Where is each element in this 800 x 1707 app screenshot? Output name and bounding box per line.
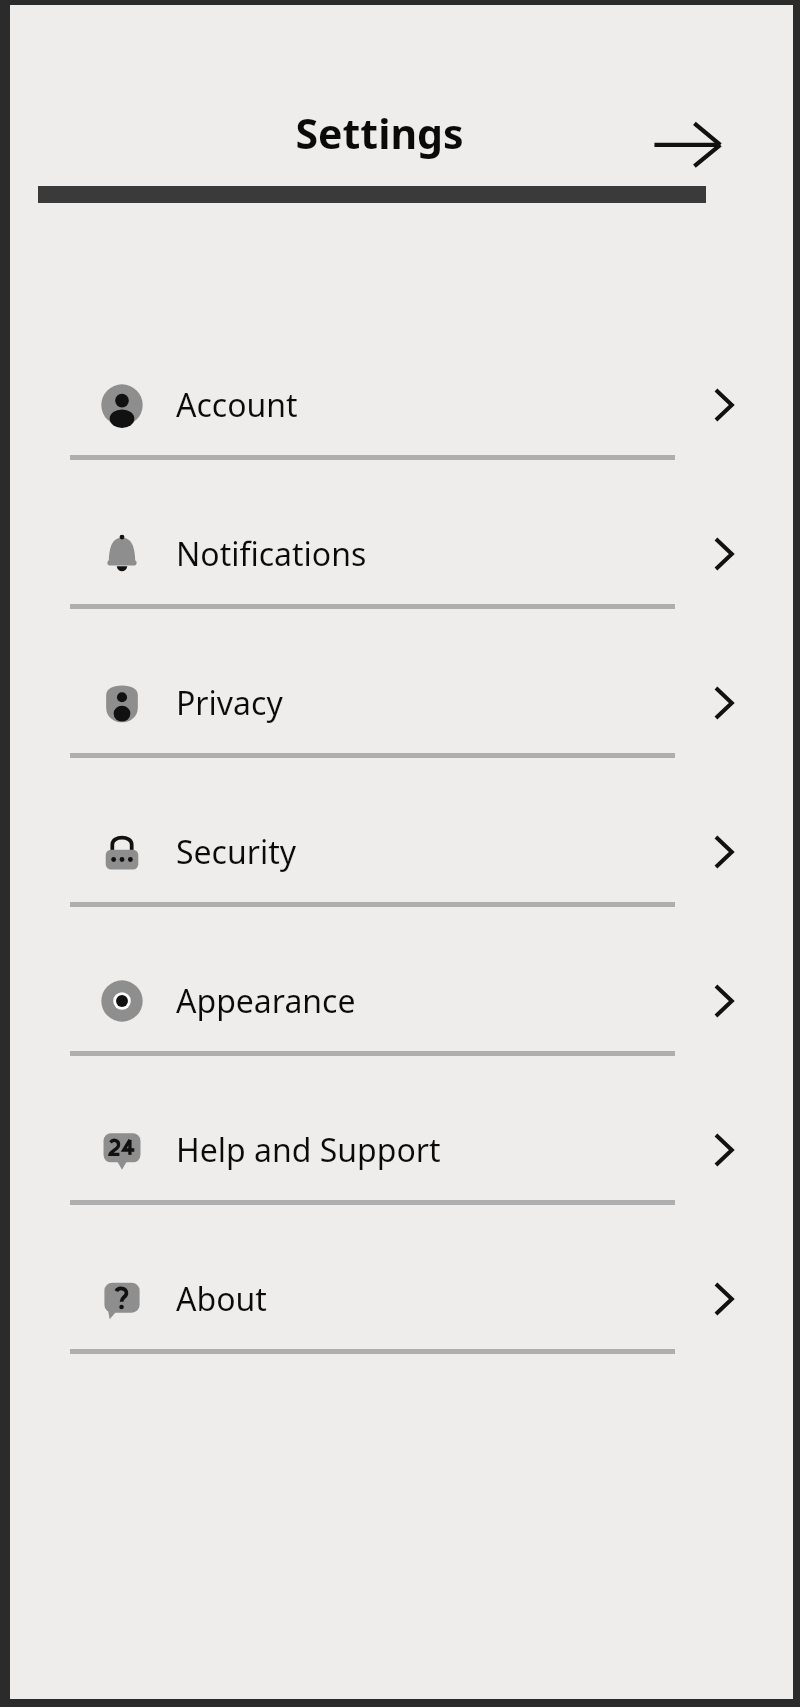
other: Appearance	[701, 979, 745, 1023]
button[interactable]: Help and Support	[10, 1100, 793, 1249]
button[interactable]: Notifications	[10, 504, 793, 653]
other: About	[701, 1277, 745, 1321]
other: Privacy	[701, 681, 745, 725]
button[interactable]: Security	[10, 802, 793, 951]
staticText: Privacy	[176, 681, 283, 725]
other: Security	[701, 830, 745, 874]
button[interactable]: About	[10, 1249, 793, 1398]
staticText: Notifications	[176, 532, 367, 576]
staticText: Appearance	[176, 979, 356, 1023]
button[interactable]: Appearance	[10, 951, 793, 1100]
staticText: Settings	[295, 105, 464, 161]
staticText: Account	[176, 383, 298, 427]
other: Account	[701, 383, 745, 427]
other: Help and Support	[701, 1128, 745, 1172]
button[interactable]: Privacy	[10, 653, 793, 802]
button[interactable]: Next	[650, 110, 724, 184]
other: Notifications	[701, 532, 745, 576]
staticText: Help and Support	[176, 1128, 441, 1172]
staticText: Security	[176, 830, 297, 874]
button[interactable]: Account	[10, 355, 793, 504]
staticText: About	[176, 1277, 267, 1321]
